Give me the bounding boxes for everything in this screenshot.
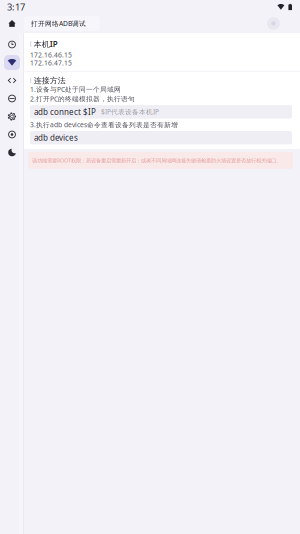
staticText: $IP代表设备本机IP <box>101 107 159 116</box>
button[interactable]: 打开网络ADB调试 <box>24 16 100 31</box>
button[interactable]: Settings <box>0 109 24 124</box>
staticText: 打开网络ADB调试 <box>31 19 86 28</box>
button[interactable]: Developer <box>0 73 24 88</box>
button[interactable]: Account <box>264 14 283 33</box>
staticText: 172.16.47.15 <box>30 59 72 67</box>
staticText: 该功能需要ROOT权限；若设备重启需重新开启；或者不同局域网连接失败请检查防火墙… <box>32 157 281 164</box>
staticText: 本机IP <box>34 39 58 49</box>
button[interactable]: Wireless debugging <box>0 55 24 70</box>
staticText: 连接方法 <box>34 76 66 85</box>
staticText: adb connect $IP <box>34 106 96 117</box>
staticText: adb devices <box>34 132 78 143</box>
button[interactable]: Blocklist <box>0 91 24 106</box>
button[interactable]: Dark mode <box>0 145 24 160</box>
staticText: 1.设备与PC处于同一个局域网 <box>30 85 121 94</box>
staticText: 3:17 <box>7 1 25 13</box>
button[interactable]: History <box>0 37 24 52</box>
staticText: 172.16.46.15 <box>30 51 72 59</box>
staticText: 3.执行adb devices命令查看设备列表是否有新增 <box>30 120 178 129</box>
staticText: 2.打开PC的终端模拟器，执行语句 <box>30 94 135 103</box>
button[interactable]: Home <box>0 14 24 33</box>
button[interactable]: About <box>0 127 24 142</box>
